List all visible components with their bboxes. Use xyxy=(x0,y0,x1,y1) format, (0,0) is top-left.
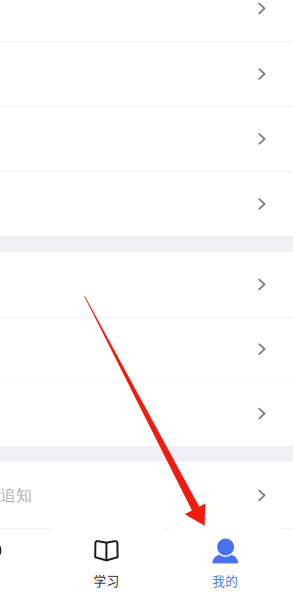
button[interactable]: Settings item 4 xyxy=(0,172,293,236)
button[interactable]: 通知 xyxy=(0,462,293,529)
button[interactable]: Settings item 5 xyxy=(0,252,293,317)
staticText: 学习 xyxy=(93,571,119,589)
button[interactable]: Settings item 3 xyxy=(0,107,293,171)
staticText: 我的 xyxy=(212,571,238,590)
button[interactable]: Settings item 7 xyxy=(0,381,293,446)
button[interactable]: Settings item 1 xyxy=(0,0,293,41)
button[interactable]: Settings item 2 xyxy=(0,42,293,106)
button[interactable]: 学习 xyxy=(50,528,162,600)
button[interactable]: Settings item 6 xyxy=(0,318,293,380)
button[interactable]: 我的 xyxy=(169,528,281,600)
staticText: 追知 xyxy=(0,485,32,505)
